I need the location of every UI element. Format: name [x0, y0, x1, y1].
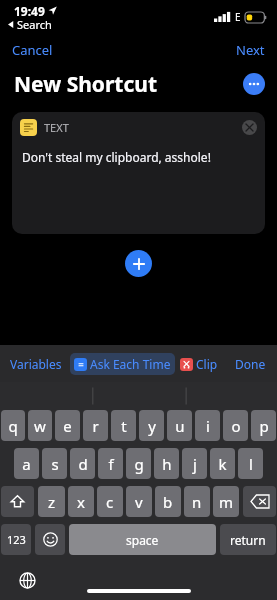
button[interactable]: c	[97, 486, 123, 517]
staticText: n	[192, 492, 202, 512]
button[interactable]: g	[126, 448, 151, 479]
staticText: q	[8, 416, 18, 436]
button[interactable]: m	[213, 486, 239, 517]
staticText: 19:49	[14, 3, 45, 19]
staticText: return	[230, 532, 266, 548]
button[interactable]: i	[195, 410, 220, 441]
staticText: E	[235, 10, 241, 24]
button[interactable]: s	[42, 448, 67, 479]
staticText: b	[163, 492, 173, 512]
button[interactable]: Ask Each Time	[70, 353, 175, 375]
staticText: o	[231, 416, 241, 436]
button[interactable]: TEXT	[12, 112, 265, 234]
staticText: s	[51, 454, 59, 474]
button[interactable]: More options	[243, 73, 265, 95]
button[interactable]: q	[1, 410, 25, 441]
button[interactable]: b	[155, 486, 181, 517]
button[interactable]: d	[70, 448, 95, 479]
button[interactable]: Switch keyboard language	[17, 570, 37, 590]
staticText: l	[249, 454, 253, 474]
button[interactable]: Cancel	[0, 37, 65, 63]
staticText: f	[108, 454, 114, 474]
staticText: k	[218, 454, 227, 474]
button[interactable]: w	[28, 410, 52, 441]
button[interactable]: Clip	[180, 352, 218, 376]
staticText: j	[193, 454, 197, 474]
staticText: g	[134, 454, 144, 474]
staticText: p	[259, 416, 269, 436]
staticText: Ask Each Time	[90, 356, 171, 372]
staticText: New Shortcut	[14, 70, 158, 99]
button[interactable]: k	[210, 448, 235, 479]
staticText: 123	[7, 532, 26, 547]
button[interactable]: Remove action	[242, 120, 257, 135]
button[interactable]: l	[238, 448, 263, 479]
button[interactable]: r	[83, 410, 108, 441]
button[interactable]: z	[38, 486, 65, 517]
staticText: h	[162, 454, 172, 474]
staticText: a	[22, 454, 31, 474]
button[interactable]: y	[139, 410, 164, 441]
button[interactable]: a	[14, 448, 39, 479]
staticText: r	[92, 416, 99, 436]
button[interactable]: Backspace	[243, 486, 276, 517]
staticText: t	[121, 416, 127, 436]
staticText: Cancel	[12, 41, 53, 59]
staticText: Clip	[196, 356, 218, 372]
button[interactable]: 123	[1, 524, 31, 555]
button[interactable]: u	[167, 410, 192, 441]
button[interactable]: Shift	[1, 486, 34, 517]
staticText: v	[135, 492, 143, 512]
button[interactable]: t	[111, 410, 136, 441]
button[interactable]: return	[220, 524, 276, 555]
staticText: u	[175, 416, 185, 436]
staticText: z	[48, 492, 56, 512]
staticText: space	[126, 532, 159, 548]
button[interactable]: Done	[231, 352, 270, 376]
staticText: c	[106, 492, 114, 512]
button[interactable]: j	[182, 448, 207, 479]
staticText: Variables	[10, 356, 62, 372]
button[interactable]: Variables	[7, 352, 65, 376]
button[interactable]: p	[251, 410, 276, 441]
button[interactable]: n	[184, 486, 210, 517]
button[interactable]: f	[98, 448, 123, 479]
staticText: Done	[235, 356, 266, 372]
button[interactable]: h	[154, 448, 179, 479]
staticText: Next	[236, 41, 265, 59]
staticText: e	[63, 416, 72, 436]
staticText: i	[206, 416, 210, 436]
staticText: y	[148, 416, 156, 436]
staticText: x	[77, 492, 85, 512]
staticText: w	[34, 416, 46, 436]
staticText: TEXT	[44, 120, 69, 135]
button[interactable]: v	[126, 486, 152, 517]
staticText: Don't steal my clipboard, asshole!	[22, 149, 211, 165]
button[interactable]: o	[223, 410, 248, 441]
button[interactable]: Add action	[125, 250, 152, 277]
staticText: d	[78, 454, 88, 474]
button[interactable]: space	[69, 524, 216, 555]
button[interactable]: x	[68, 486, 94, 517]
staticText: Search	[17, 17, 52, 32]
button[interactable]: Next	[224, 37, 277, 63]
button[interactable]: e	[55, 410, 80, 441]
button[interactable]: Emoji	[35, 524, 65, 555]
staticText: m	[219, 492, 234, 512]
